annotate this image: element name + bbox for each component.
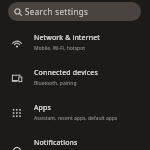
staticText: Network & internet: [34, 33, 100, 43]
staticText: Bluetooth, pairing: [34, 80, 77, 87]
button[interactable]: Connected devices: [0, 62, 150, 97]
button[interactable]: Apps: [0, 97, 150, 132]
button[interactable]: Search settings: [8, 2, 141, 21]
staticText: Connected devices: [34, 68, 98, 78]
button[interactable]: Notifications: [0, 132, 150, 150]
staticText: Assistant, recent apps, default apps: [34, 115, 118, 122]
staticText: Search settings: [25, 6, 89, 17]
staticText: Mobile, Wi-Fi, hotspot: [34, 45, 85, 52]
button[interactable]: Network & internet: [0, 27, 150, 62]
staticText: Apps: [34, 103, 52, 113]
staticText: Notifications: [34, 138, 78, 148]
